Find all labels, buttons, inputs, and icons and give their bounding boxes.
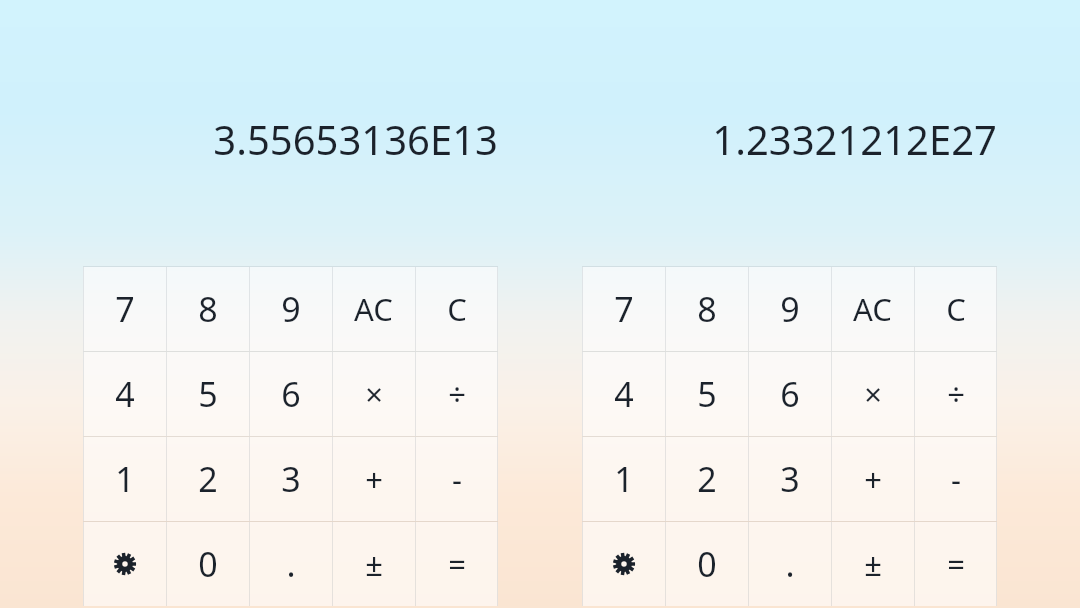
button[interactable]: 7	[83, 267, 166, 351]
button[interactable]: Multiply	[831, 352, 914, 436]
staticText: ±	[365, 543, 383, 585]
staticText: .	[785, 541, 795, 587]
button[interactable]: Decimal point	[748, 522, 831, 606]
button[interactable]: Subtract	[415, 437, 498, 521]
staticText: 1	[115, 456, 135, 502]
staticText: -	[452, 458, 462, 500]
staticText: 3	[780, 456, 800, 502]
button[interactable]: 3	[748, 437, 831, 521]
button[interactable]: Add	[831, 437, 914, 521]
button[interactable]: 2	[166, 437, 249, 521]
button[interactable]: 8	[166, 267, 249, 351]
button[interactable]: 1	[83, 437, 166, 521]
button[interactable]: Equals	[415, 522, 498, 606]
button[interactable]: 9	[748, 267, 831, 351]
staticText: 8	[198, 286, 218, 332]
staticText: 5	[697, 371, 717, 417]
button[interactable]: Add	[332, 437, 415, 521]
staticText: ÷	[947, 373, 965, 415]
button[interactable]: Toggle sign	[332, 522, 415, 606]
staticText: +	[864, 458, 882, 500]
staticText: ×	[864, 373, 882, 415]
button[interactable]: 0	[665, 522, 748, 606]
staticText: 0	[697, 541, 717, 587]
staticText: 1.23321212E27	[582, 112, 997, 166]
staticText: -	[951, 458, 961, 500]
staticText: 2	[198, 456, 218, 502]
button[interactable]: 6	[249, 352, 332, 436]
staticText: 0	[198, 541, 218, 587]
button[interactable]: 5	[665, 352, 748, 436]
staticText: 3	[281, 456, 301, 502]
button[interactable]: All clear	[332, 267, 415, 351]
staticText: 2	[697, 456, 717, 502]
staticText: 5	[198, 371, 218, 417]
button[interactable]: Subtract	[914, 437, 997, 521]
button[interactable]: Equals	[914, 522, 997, 606]
staticText: +	[365, 458, 383, 500]
button[interactable]: Toggle sign	[831, 522, 914, 606]
button[interactable]: 3	[249, 437, 332, 521]
button[interactable]: All clear	[831, 267, 914, 351]
button[interactable]: 2	[665, 437, 748, 521]
staticText: C	[447, 288, 467, 330]
staticText: C	[946, 288, 966, 330]
button[interactable]: Divide	[415, 352, 498, 436]
staticText: 9	[780, 286, 800, 332]
staticText: ±	[864, 543, 882, 585]
button[interactable]: Divide	[914, 352, 997, 436]
staticText: =	[947, 543, 965, 585]
button[interactable]: 6	[748, 352, 831, 436]
staticText: .	[286, 541, 296, 587]
staticText: 9	[281, 286, 301, 332]
staticText: 6	[780, 371, 800, 417]
staticText: 4	[115, 371, 135, 417]
button[interactable]: Clear	[415, 267, 498, 351]
staticText: 7	[614, 286, 634, 332]
button[interactable]: 4	[83, 352, 166, 436]
staticText: 3.55653136E13	[83, 112, 498, 166]
staticText: ÷	[448, 373, 466, 415]
staticText: AC	[853, 288, 892, 330]
staticText: ×	[365, 373, 383, 415]
button[interactable]: 4	[582, 352, 665, 436]
button[interactable]: 5	[166, 352, 249, 436]
button[interactable]: 8	[665, 267, 748, 351]
staticText: 4	[614, 371, 634, 417]
staticText: AC	[354, 288, 393, 330]
button[interactable]: 9	[249, 267, 332, 351]
button[interactable]: 1	[582, 437, 665, 521]
staticText: =	[448, 543, 466, 585]
button[interactable]: Settings	[582, 522, 665, 606]
button[interactable]: Clear	[914, 267, 997, 351]
staticText: 8	[697, 286, 717, 332]
staticText: 6	[281, 371, 301, 417]
button[interactable]: Multiply	[332, 352, 415, 436]
staticText: 1	[614, 456, 634, 502]
button[interactable]: Settings	[83, 522, 166, 606]
button[interactable]: Decimal point	[249, 522, 332, 606]
button[interactable]: 0	[166, 522, 249, 606]
button[interactable]: 7	[582, 267, 665, 351]
staticText: 7	[115, 286, 135, 332]
